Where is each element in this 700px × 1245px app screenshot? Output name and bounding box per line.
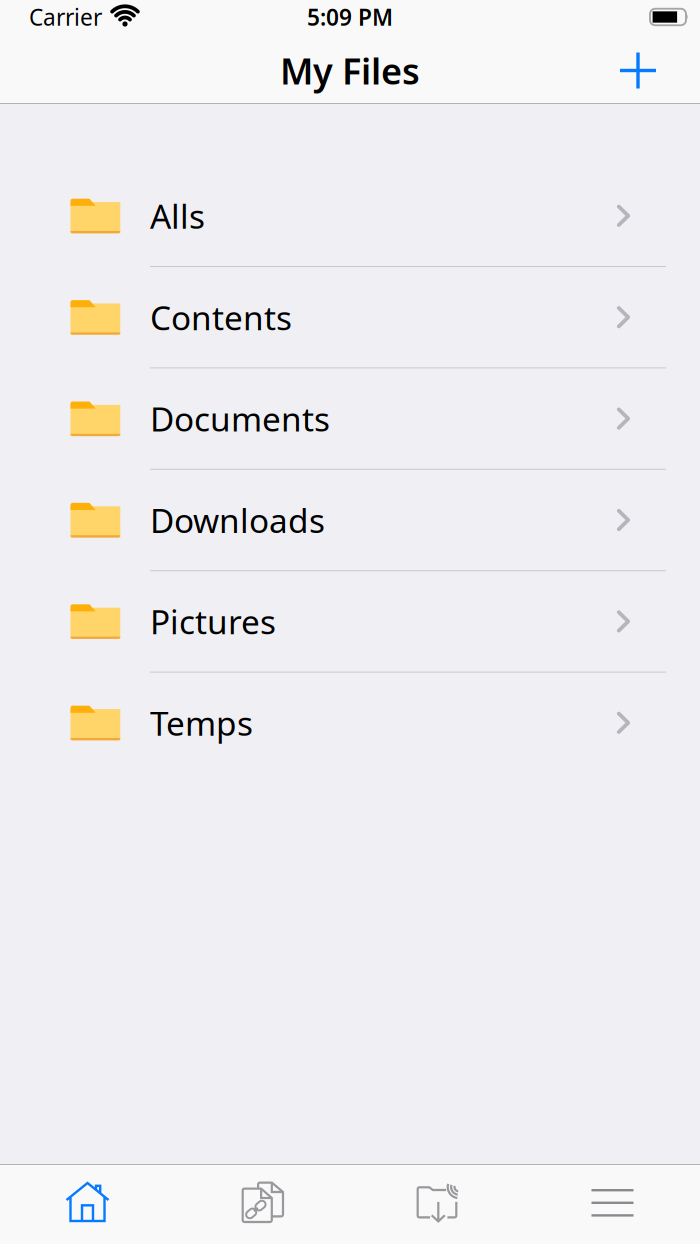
staticText: Downloads <box>150 498 325 542</box>
button[interactable]: Documents <box>0 368 700 469</box>
button[interactable]: More <box>525 1165 700 1240</box>
staticText: Contents <box>150 295 292 339</box>
staticText: 5:09 PM <box>307 2 393 32</box>
staticText: Pictures <box>150 599 276 644</box>
button[interactable]: Add <box>616 48 660 92</box>
staticText: Temps <box>150 701 253 745</box>
staticText: Carrier <box>29 2 102 32</box>
button[interactable]: Contents <box>0 267 700 367</box>
staticText: Documents <box>150 396 330 441</box>
button[interactable]: Alls <box>0 166 700 266</box>
button[interactable]: Downloads <box>350 1165 525 1240</box>
button[interactable]: Shared links <box>175 1165 350 1240</box>
button[interactable]: Home <box>0 1165 175 1240</box>
button[interactable]: Temps <box>0 673 700 773</box>
button[interactable]: Pictures <box>0 571 700 672</box>
staticText: My Files <box>280 47 420 94</box>
staticText: Alls <box>150 194 205 238</box>
button[interactable]: Downloads <box>0 470 700 570</box>
